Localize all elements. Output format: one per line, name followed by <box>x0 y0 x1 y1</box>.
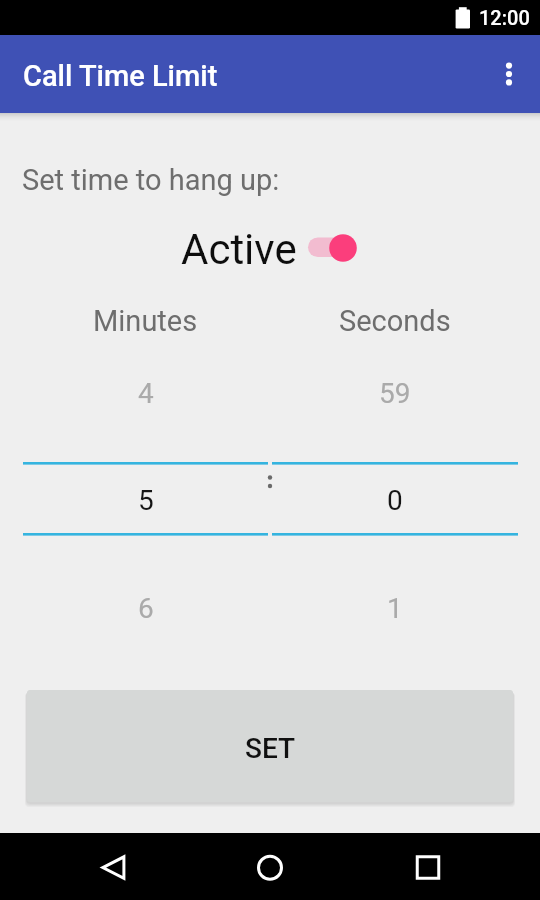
staticText: 59 <box>379 377 411 410</box>
button[interactable]: SET <box>27 690 513 802</box>
staticText: Seconds <box>339 304 451 338</box>
staticText: Active <box>181 225 297 274</box>
staticText: 1 <box>387 592 403 625</box>
button[interactable]: Active toggle <box>305 230 360 266</box>
staticText: 12:00 <box>479 6 530 29</box>
button[interactable]: Recent apps <box>396 833 460 900</box>
button[interactable]: Back <box>81 833 145 900</box>
staticText: 0 <box>387 484 403 517</box>
button[interactable]: Seconds <box>272 300 518 630</box>
staticText: SET <box>245 732 296 765</box>
button[interactable]: Home <box>238 833 302 900</box>
staticText: Minutes <box>93 304 198 338</box>
button[interactable]: Minutes <box>23 300 268 630</box>
button[interactable]: More options <box>485 50 533 98</box>
staticText: 5 <box>138 484 154 517</box>
staticText: 6 <box>138 592 154 625</box>
staticText: Set time to hang up: <box>22 163 280 197</box>
staticText: 4 <box>138 377 154 410</box>
staticText: Call Time Limit <box>23 59 218 93</box>
